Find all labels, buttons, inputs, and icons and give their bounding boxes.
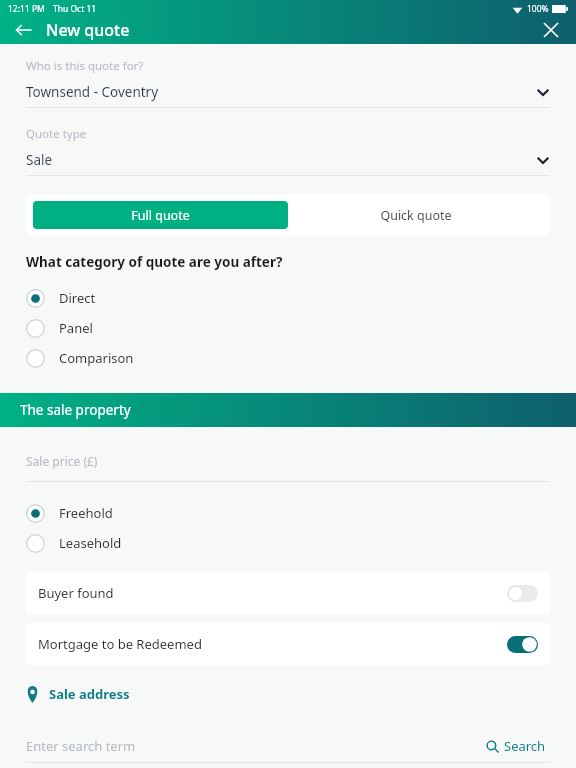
- button[interactable]: Back: [8, 16, 40, 44]
- staticText: Enter search term: [26, 737, 136, 755]
- staticText: Townsend - Coventry: [26, 83, 159, 101]
- button[interactable]: Quote type: [0, 126, 576, 176]
- staticText: New quote: [46, 19, 130, 41]
- staticText: Quick quote: [380, 207, 452, 224]
- staticText: Panel: [59, 319, 93, 337]
- button[interactable]: Comparison: [0, 343, 576, 373]
- button[interactable]: Leasehold: [0, 528, 576, 558]
- staticText: Who is this quote for?: [26, 58, 144, 74]
- button[interactable]: Full quote: [33, 201, 288, 229]
- staticText: Leasehold: [59, 534, 122, 552]
- button[interactable]: Panel: [0, 313, 576, 343]
- button[interactable]: Quick quote: [288, 201, 543, 229]
- staticText: Search: [504, 737, 546, 755]
- staticText: The sale property: [20, 401, 131, 419]
- button[interactable]: Sale address: [0, 683, 142, 705]
- staticText: Sale address: [49, 685, 130, 703]
- staticText: Full quote: [131, 207, 190, 224]
- staticText: Freehold: [59, 504, 113, 522]
- staticText: Thu Oct 11: [53, 3, 97, 15]
- staticText: Buyer found: [38, 584, 114, 602]
- staticText: Sale: [26, 151, 53, 169]
- staticText: 12:11 PM: [8, 3, 45, 15]
- button[interactable]: Freehold: [0, 498, 576, 528]
- staticText: Direct: [59, 289, 96, 307]
- button[interactable]: Close: [536, 16, 566, 44]
- button[interactable]: Mortgage to be Redeemed: [26, 623, 550, 665]
- staticText: Sale price (£): [26, 453, 98, 469]
- staticText: Comparison: [59, 349, 134, 367]
- staticText: Mortgage to be Redeemed: [38, 635, 202, 653]
- button[interactable]: Direct: [0, 283, 576, 313]
- button[interactable]: Buyer found: [26, 572, 550, 614]
- staticText: 100%: [527, 3, 549, 15]
- staticText: Quote type: [26, 126, 87, 142]
- staticText: What category of quote are you after?: [26, 253, 283, 271]
- button[interactable]: Search: [482, 733, 550, 759]
- button[interactable]: Who is this quote for?: [0, 58, 576, 108]
